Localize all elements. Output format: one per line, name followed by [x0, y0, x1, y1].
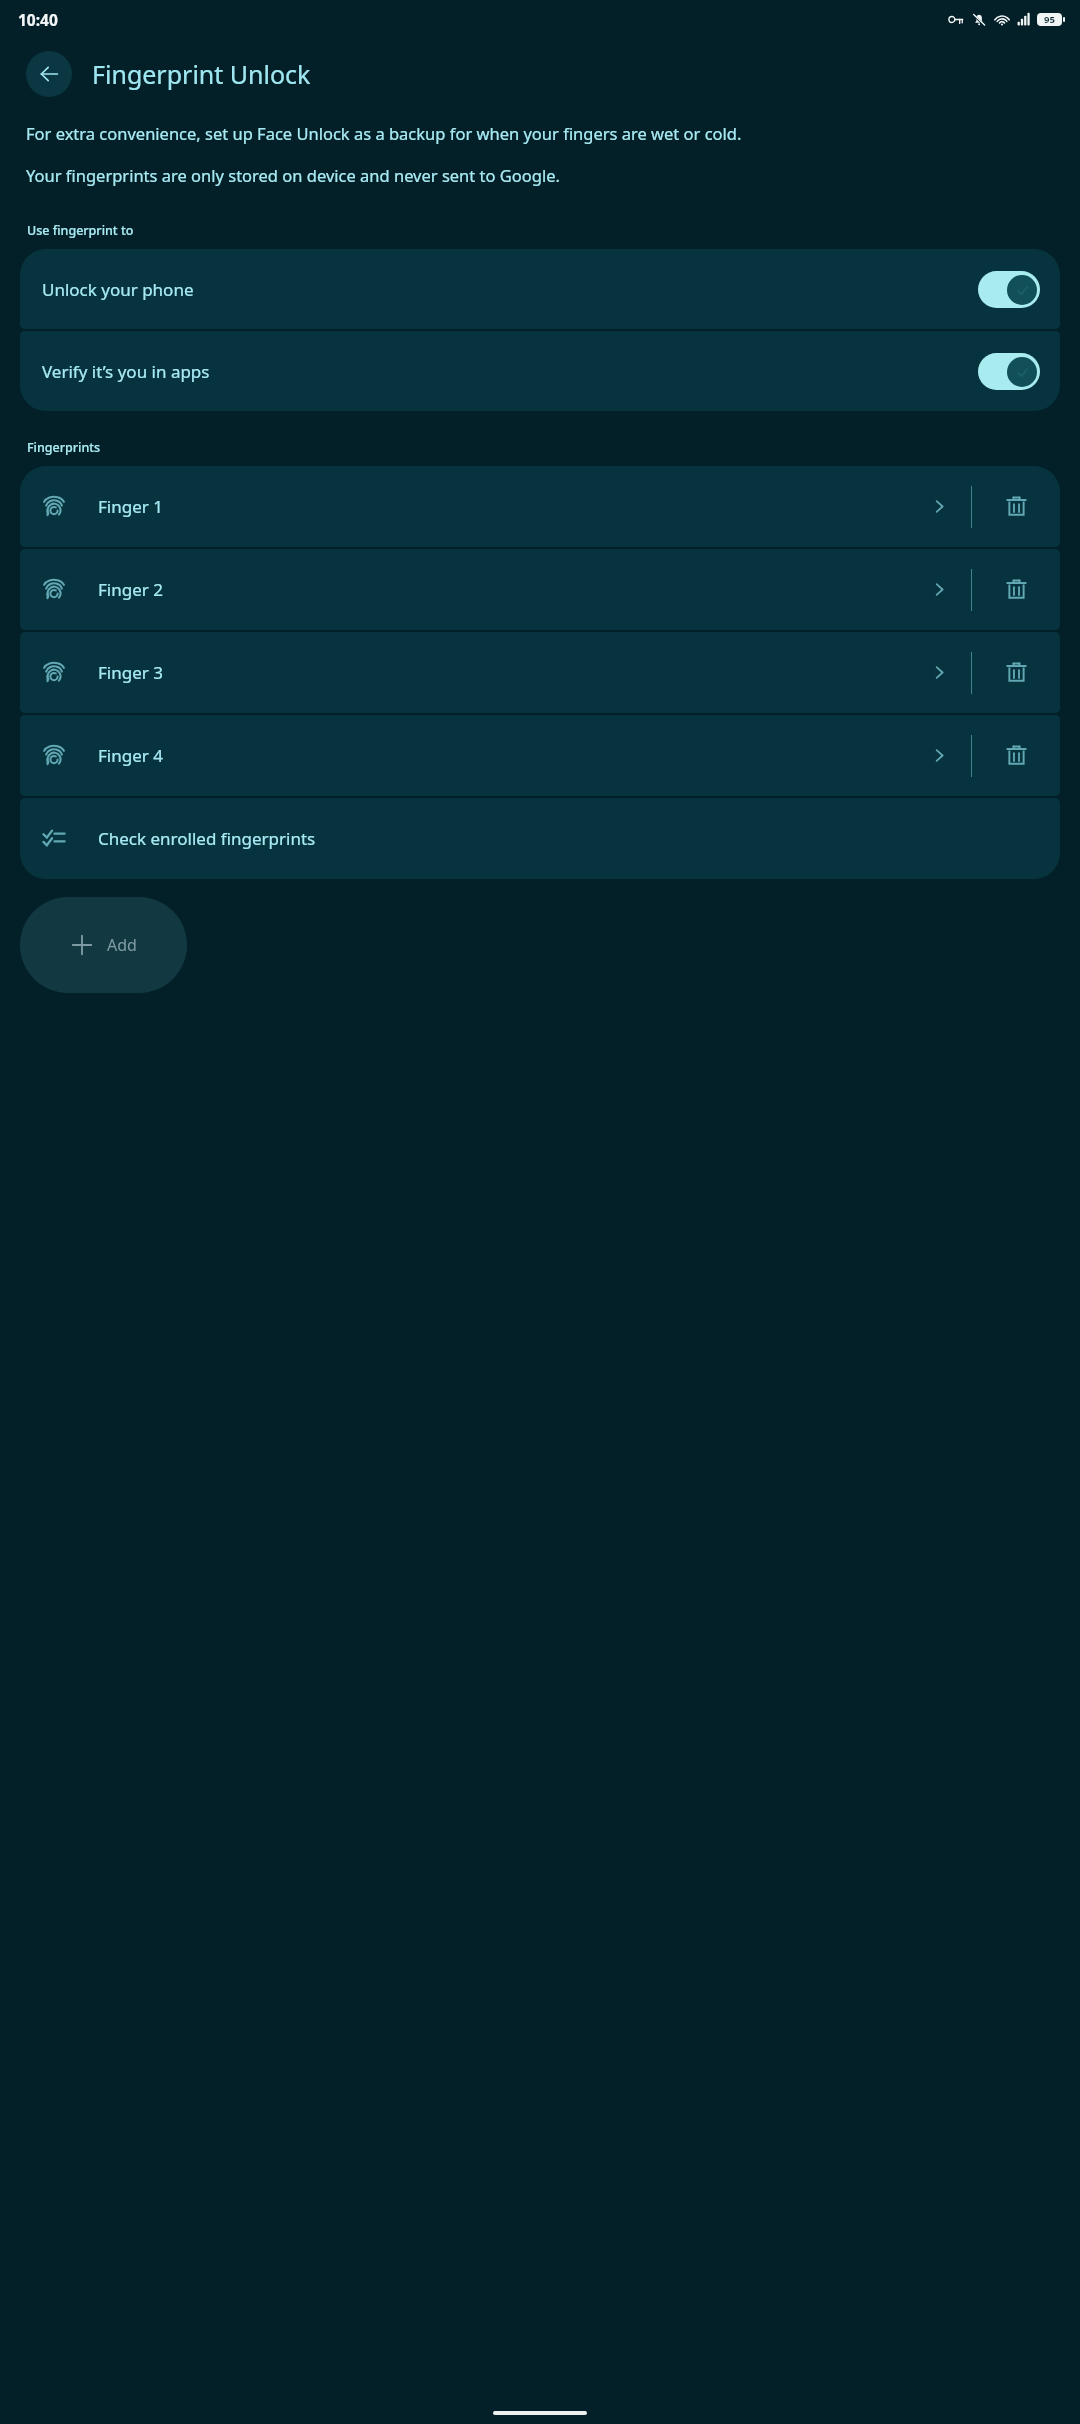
button[interactable]: Add: [20, 897, 187, 993]
staticText: Add: [107, 934, 137, 956]
button[interactable]: Finger 2: [20, 549, 971, 630]
button[interactable]: Finger 1: [20, 466, 971, 547]
staticText: 10:40: [18, 9, 58, 30]
button[interactable]: Verify it’s you in apps: [20, 331, 1060, 411]
button[interactable]: Delete Finger 3: [972, 632, 1060, 713]
button[interactable]: Delete Finger 2: [972, 549, 1060, 630]
staticText: Finger 1: [98, 495, 163, 518]
button[interactable]: Check enrolled fingerprints: [20, 798, 1060, 879]
button[interactable]: Delete Finger 4: [972, 715, 1060, 796]
button[interactable]: Unlock your phone: [20, 249, 1060, 329]
staticText: Fingerprints: [27, 439, 101, 456]
staticText: Your fingerprints are only stored on dev…: [26, 164, 560, 186]
staticText: 95: [1044, 13, 1055, 26]
staticText: Fingerprint Unlock: [92, 57, 311, 91]
staticText: Finger 2: [98, 578, 163, 601]
button[interactable]: Finger 4: [20, 715, 971, 796]
staticText: Finger 4: [98, 744, 163, 767]
button[interactable]: Back: [26, 51, 72, 97]
staticText: Finger 3: [98, 661, 163, 684]
staticText: Check enrolled fingerprints: [98, 827, 316, 850]
staticText: Unlock your phone: [42, 278, 978, 301]
button[interactable]: Delete Finger 1: [972, 466, 1060, 547]
button[interactable]: Finger 3: [20, 632, 971, 713]
staticText: Use fingerprint to: [27, 222, 134, 239]
staticText: Verify it’s you in apps: [42, 360, 978, 383]
staticText: For extra convenience, set up Face Unloc…: [26, 122, 742, 144]
